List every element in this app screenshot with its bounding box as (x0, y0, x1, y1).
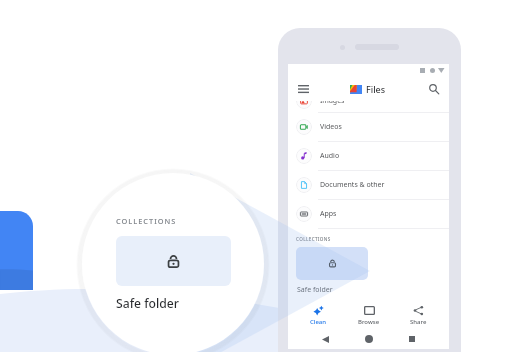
staticText: Audio (320, 151, 340, 161)
staticText: Safe folder (297, 285, 333, 295)
staticText: Documents & other (320, 180, 385, 190)
button[interactable]: Apps (288, 200, 449, 228)
button[interactable] (116, 236, 231, 286)
staticText: Share (410, 318, 427, 326)
button[interactable]: Back (318, 332, 332, 346)
staticText: Videos (320, 122, 342, 132)
button[interactable]: Documents & other (288, 171, 449, 199)
button[interactable]: Recents (405, 332, 419, 346)
button[interactable]: Browse (350, 303, 388, 328)
staticText: Apps (320, 209, 337, 219)
staticText: Browse (358, 318, 380, 326)
button[interactable]: Videos (288, 113, 449, 141)
button[interactable] (296, 247, 368, 280)
staticText: Safe folder (116, 295, 179, 312)
button[interactable]: Search (426, 81, 442, 97)
button[interactable]: Home (362, 332, 376, 346)
button[interactable]: Audio (288, 142, 449, 170)
staticText: Files (366, 83, 386, 95)
staticText: COLLECTIONS (116, 216, 177, 226)
button[interactable]: Clean (302, 303, 335, 328)
staticText: Images (320, 101, 345, 106)
staticText: COLLECTIONS (296, 236, 331, 242)
button[interactable]: Menu (295, 81, 311, 97)
button[interactable]: Share (402, 303, 435, 328)
staticText: Clean (310, 318, 327, 326)
